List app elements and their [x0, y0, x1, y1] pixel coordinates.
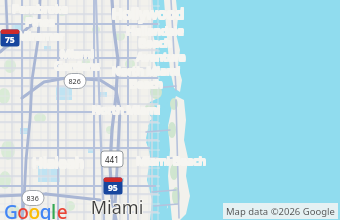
- button[interactable]: Map of Miami area: [0, 0, 340, 220]
